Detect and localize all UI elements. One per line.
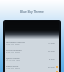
staticText: 90 min: [48, 66, 55, 69]
staticText: Focus session: [6, 48, 22, 51]
button[interactable]: Review notes: [5, 71, 59, 72]
staticText: Morning routine: [6, 40, 25, 43]
staticText: 1:00 PM work: [6, 67, 20, 70]
staticText: 12 min: [48, 42, 55, 45]
button[interactable]: Focus session: [5, 47, 59, 55]
button[interactable]: Quick break: [5, 55, 59, 63]
button[interactable]: Deep work: [5, 63, 59, 71]
staticText: Deep work: [6, 64, 19, 67]
staticText: 45 min: [48, 50, 55, 53]
button[interactable]: Morning routine: [5, 39, 59, 47]
staticText: 7:00 AM daily: [6, 43, 20, 46]
staticText: Quick break: [6, 56, 20, 59]
staticText: Blue Sky Theme: [20, 10, 44, 14]
staticText: 11:15 AM rest: [6, 59, 20, 62]
staticText: 9:30 AM work: [6, 51, 20, 54]
staticText: 5 min: [49, 58, 55, 61]
